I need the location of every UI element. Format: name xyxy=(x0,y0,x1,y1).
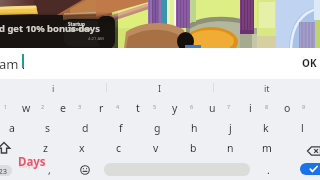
staticText: o xyxy=(284,101,291,115)
staticText: 3 xyxy=(78,103,82,110)
staticText: b xyxy=(190,141,197,155)
button[interactable]: OK xyxy=(299,54,320,72)
staticText: it xyxy=(264,82,270,94)
staticText: m xyxy=(262,141,272,155)
staticText: y xyxy=(172,101,178,115)
button[interactable]: c xyxy=(102,138,136,158)
staticText: r xyxy=(99,101,104,115)
staticText: am i xyxy=(0,55,26,73)
staticText: d get 10% bonus days xyxy=(0,22,100,35)
staticText: j xyxy=(229,121,232,135)
staticText: t xyxy=(136,101,140,115)
staticText: i xyxy=(249,101,252,115)
button[interactable]: k xyxy=(249,118,283,138)
button[interactable]: r xyxy=(84,98,118,118)
button[interactable]: e xyxy=(46,98,80,118)
staticText: a xyxy=(9,121,15,135)
staticText: n xyxy=(227,141,234,155)
staticText: I xyxy=(158,82,162,94)
staticText: z xyxy=(43,141,48,155)
staticText: k xyxy=(263,121,269,135)
button[interactable]: b xyxy=(176,138,210,158)
staticText: s xyxy=(45,121,51,135)
button[interactable]: q xyxy=(0,98,6,118)
button[interactable]: ?123 xyxy=(0,165,12,176)
staticText: 7 xyxy=(227,103,231,110)
staticText: 8 xyxy=(265,103,269,110)
staticText: Days xyxy=(18,154,46,170)
button[interactable]: l xyxy=(285,118,319,138)
staticText: OK xyxy=(302,56,317,70)
button[interactable]: v xyxy=(139,138,173,158)
staticText: ?123 xyxy=(0,166,8,176)
button[interactable]: Enter xyxy=(300,163,320,175)
button[interactable]: i xyxy=(0,79,106,96)
staticText: Startup xyxy=(68,21,85,27)
staticText: 2 xyxy=(41,103,45,110)
button[interactable]: x xyxy=(65,138,99,158)
button[interactable]: z xyxy=(28,138,62,158)
button[interactable]: f xyxy=(104,118,138,138)
button[interactable]: n xyxy=(213,138,247,158)
button[interactable]: Shift xyxy=(0,138,21,158)
button[interactable]: s xyxy=(31,118,65,138)
staticText: 6 xyxy=(190,103,194,110)
button[interactable]: d xyxy=(68,118,102,138)
button[interactable]: w xyxy=(9,98,43,118)
staticText: 9 xyxy=(302,103,306,110)
staticText: v xyxy=(153,141,159,155)
staticText: h xyxy=(191,121,198,135)
staticText: g xyxy=(154,121,161,135)
button[interactable]: i xyxy=(233,98,267,118)
button[interactable]: j xyxy=(213,118,247,138)
button[interactable]: it xyxy=(214,79,320,96)
button[interactable]: m xyxy=(250,138,284,158)
button[interactable]: g xyxy=(140,118,174,138)
button[interactable]: h xyxy=(177,118,211,138)
button[interactable]: , xyxy=(32,160,66,180)
staticText: d xyxy=(82,121,89,135)
button[interactable]: y xyxy=(158,98,192,118)
button[interactable]: . xyxy=(251,160,285,180)
staticText: 5 xyxy=(153,103,157,110)
button[interactable]: Emoji xyxy=(68,160,102,180)
button[interactable]: I xyxy=(107,79,213,96)
staticText: c xyxy=(116,141,122,155)
staticText: 4:21 AM xyxy=(88,36,104,42)
staticText: e xyxy=(60,101,66,115)
staticText: x xyxy=(79,141,85,155)
staticText: f xyxy=(119,121,123,135)
staticText: . xyxy=(267,163,270,177)
button[interactable]: Backspace xyxy=(297,141,320,161)
staticText: u xyxy=(209,101,216,115)
button[interactable]: u xyxy=(195,98,229,118)
staticText: 1 xyxy=(4,103,8,110)
staticText: l xyxy=(301,121,304,135)
staticText: w xyxy=(22,101,31,115)
button[interactable]: t xyxy=(121,98,155,118)
staticText: ever y day xyxy=(19,164,39,169)
staticText: 4 xyxy=(116,103,120,110)
staticText: i xyxy=(52,82,55,94)
button[interactable]: a xyxy=(0,118,29,138)
staticText: , xyxy=(48,163,51,177)
button[interactable]: Space xyxy=(104,163,250,176)
staticText: Take Time xyxy=(68,26,91,32)
button[interactable]: o xyxy=(270,98,304,118)
